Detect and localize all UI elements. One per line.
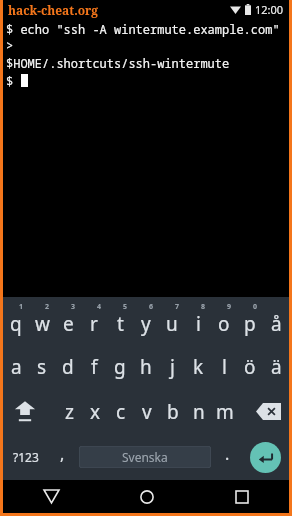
staticText: h: [140, 354, 152, 380]
button[interactable]: a: [3, 344, 29, 389]
staticText: b: [167, 399, 179, 425]
button[interactable]: h: [133, 344, 159, 389]
staticText: d: [62, 354, 74, 380]
staticText: Svenska: [122, 449, 168, 465]
staticText: j: [170, 354, 175, 380]
button[interactable]: Enter: [241, 434, 289, 480]
staticText: .: [225, 443, 230, 465]
button[interactable]: Shift: [3, 389, 46, 434]
staticText: r: [90, 311, 98, 337]
staticText: hack-cheat.org: [8, 2, 99, 18]
staticText: 1: [19, 302, 24, 312]
staticText: o: [218, 311, 230, 337]
button[interactable]: ä: [263, 344, 289, 389]
staticText: $HOME/.shortcuts/ssh-wintermute: [6, 55, 230, 71]
staticText: $ echo "ssh -A wintermute.example.com" >: [6, 21, 289, 53]
button[interactable]: n: [186, 389, 212, 434]
staticText: ä: [271, 354, 282, 380]
staticText: 0: [253, 302, 258, 312]
staticText: f: [91, 354, 98, 380]
button[interactable]: ö: [237, 344, 263, 389]
staticText: 4: [97, 302, 102, 312]
button[interactable]: Home: [99, 480, 194, 513]
staticText: p: [244, 311, 256, 337]
staticText: s: [37, 354, 47, 380]
staticText: 7: [175, 302, 180, 312]
button[interactable]: Backspace: [247, 389, 289, 434]
staticText: c: [116, 399, 126, 425]
button[interactable]: m: [212, 389, 238, 434]
button[interactable]: c: [108, 389, 134, 434]
staticText: 5: [123, 302, 128, 312]
button[interactable]: g: [107, 344, 133, 389]
staticText: v: [142, 399, 152, 425]
staticText: a: [11, 354, 22, 380]
button[interactable]: v: [134, 389, 160, 434]
button[interactable]: s: [29, 344, 55, 389]
button[interactable]: ?123: [3, 434, 49, 480]
button[interactable]: ,: [49, 434, 76, 480]
staticText: x: [90, 399, 101, 425]
staticText: $: [6, 73, 21, 89]
staticText: t: [117, 311, 124, 337]
staticText: l: [222, 354, 227, 380]
staticText: 9: [227, 302, 232, 312]
button[interactable]: b: [160, 389, 186, 434]
staticText: 3: [71, 302, 76, 312]
button[interactable]: l: [211, 344, 237, 389]
staticText: i: [196, 311, 201, 337]
button[interactable]: f: [81, 344, 107, 389]
button[interactable]: Back: [3, 480, 99, 513]
button[interactable]: j: [159, 344, 185, 389]
button[interactable]: 6: [133, 297, 159, 344]
button[interactable]: 0: [237, 297, 263, 344]
button[interactable]: z: [56, 389, 82, 434]
button[interactable]: 2: [29, 297, 55, 344]
button[interactable]: k: [185, 344, 211, 389]
staticText: 2: [45, 302, 50, 312]
button[interactable]: x: [82, 389, 108, 434]
staticText: u: [166, 311, 178, 337]
staticText: g: [114, 354, 126, 380]
button[interactable]: Recents: [194, 480, 289, 513]
button[interactable]: 9: [211, 297, 237, 344]
staticText: ?123: [13, 449, 39, 465]
staticText: k: [193, 354, 204, 380]
button[interactable]: .: [214, 434, 241, 480]
staticText: 6: [149, 302, 154, 312]
button[interactable]: 3: [55, 297, 81, 344]
button[interactable]: å: [263, 297, 289, 344]
staticText: 8: [201, 302, 206, 312]
button[interactable]: d: [55, 344, 81, 389]
staticText: m: [216, 399, 234, 425]
button[interactable]: 7: [159, 297, 185, 344]
button[interactable]: 4: [81, 297, 107, 344]
staticText: w: [35, 311, 50, 337]
staticText: z: [65, 399, 74, 425]
staticText: e: [63, 311, 74, 337]
button[interactable]: Svenska: [79, 446, 211, 468]
staticText: å: [271, 311, 282, 337]
staticText: ,: [60, 443, 65, 465]
button[interactable]: 1: [3, 297, 29, 344]
button[interactable]: 5: [107, 297, 133, 344]
button[interactable]: 8: [185, 297, 211, 344]
staticText: 12:00: [255, 2, 284, 17]
staticText: n: [193, 399, 205, 425]
staticText: ö: [244, 354, 256, 380]
staticText: q: [10, 311, 22, 337]
staticText: y: [141, 311, 151, 337]
